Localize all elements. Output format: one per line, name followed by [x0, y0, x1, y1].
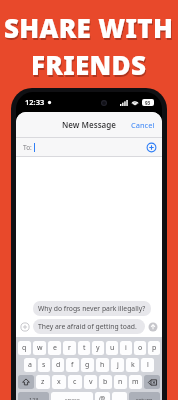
staticText: v [89, 377, 93, 387]
staticText: Why do frogs never park illegally? [38, 304, 146, 313]
staticText: o [138, 343, 143, 353]
staticText: n [118, 377, 123, 387]
staticText: x [57, 377, 61, 387]
button[interactable]: Shift [18, 375, 34, 389]
staticText: a [28, 360, 32, 370]
button[interactable]: z [36, 375, 50, 389]
staticText: y [96, 343, 100, 353]
button[interactable]: Send [148, 322, 158, 332]
button[interactable]: u [106, 341, 118, 355]
staticText: FRIENDS [32, 49, 148, 84]
staticText: Cancel [131, 120, 155, 130]
staticText: 93 [145, 100, 151, 106]
staticText: 123 [29, 396, 39, 400]
button[interactable]: y [92, 341, 104, 355]
staticText: m [132, 377, 139, 387]
staticText: 12:33 [25, 97, 45, 107]
staticText: p [152, 343, 157, 353]
staticText: @ [99, 394, 106, 400]
button[interactable]: 123 [18, 392, 49, 400]
button[interactable]: c [68, 375, 82, 389]
staticText: i [125, 343, 127, 353]
staticText: r [68, 343, 71, 353]
button[interactable]: f [66, 358, 79, 372]
staticText: New Message [62, 119, 116, 130]
button[interactable]: m [129, 375, 142, 389]
button[interactable]: t [78, 341, 90, 355]
button[interactable]: Cancel [124, 115, 162, 135]
button[interactable]: s [38, 358, 50, 372]
button[interactable]: d [52, 358, 64, 372]
button[interactable]: space [51, 392, 93, 400]
button[interactable]: g [81, 358, 94, 372]
button[interactable]: i [120, 341, 132, 355]
button[interactable]: Add attachment [20, 322, 30, 332]
staticText: q [22, 343, 27, 353]
button[interactable]: l [141, 358, 154, 372]
button[interactable]: h [96, 358, 109, 372]
button[interactable]: v [84, 375, 97, 389]
button[interactable]: r [63, 341, 76, 355]
button[interactable]: n [114, 375, 127, 389]
staticText: u [110, 343, 115, 353]
staticText: return [136, 396, 153, 400]
button[interactable]: . [112, 392, 127, 400]
staticText: SHARE WITH [4, 10, 174, 45]
button[interactable]: a [24, 358, 36, 372]
button[interactable]: @ [95, 392, 110, 400]
staticText: g [85, 360, 90, 370]
button[interactable]: Delete [144, 375, 160, 389]
staticText: j [117, 360, 119, 370]
staticText: w [37, 343, 43, 353]
staticText: To: [23, 143, 32, 152]
staticText: t [83, 343, 86, 353]
staticText: h [100, 360, 105, 370]
staticText: FRIENDS [31, 47, 147, 82]
staticText: z [41, 377, 45, 387]
staticText: l [147, 360, 149, 370]
staticText: f [71, 360, 74, 370]
button[interactable]: Add contact [146, 142, 157, 153]
button[interactable]: x [52, 375, 66, 389]
staticText: s [42, 360, 46, 370]
button[interactable]: return [129, 392, 160, 400]
staticText: SHARE WITH [5, 12, 175, 47]
button[interactable]: e [48, 341, 61, 355]
staticText: k [131, 360, 135, 370]
staticText: d [56, 360, 61, 370]
staticText: c [73, 377, 77, 387]
staticText: They are afraid of getting toad. [38, 322, 137, 331]
button[interactable]: k [126, 358, 139, 372]
button[interactable]: q [18, 341, 31, 355]
button[interactable]: b [99, 375, 112, 389]
button[interactable]: o [134, 341, 146, 355]
button[interactable]: p [148, 341, 160, 355]
button[interactable]: w [33, 341, 46, 355]
staticText: space [65, 396, 80, 400]
button[interactable]: j [111, 358, 124, 372]
staticText: b [103, 377, 108, 387]
staticText: e [53, 343, 57, 353]
